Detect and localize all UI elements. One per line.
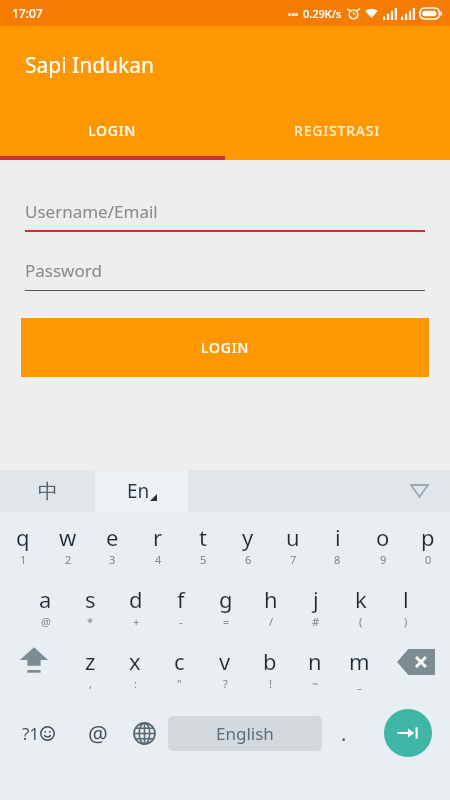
staticText: h bbox=[264, 584, 278, 614]
staticText: f bbox=[177, 584, 185, 614]
staticText: @ bbox=[88, 718, 108, 748]
staticText: l bbox=[403, 584, 409, 614]
staticText: 0 bbox=[425, 552, 432, 567]
button[interactable]: r bbox=[135, 516, 180, 578]
staticText: n bbox=[308, 646, 322, 676]
button[interactable]: i bbox=[315, 516, 360, 578]
button[interactable]: a bbox=[22, 578, 68, 640]
button[interactable]: s bbox=[68, 578, 113, 640]
staticText: = bbox=[223, 614, 230, 629]
staticText: t bbox=[199, 522, 207, 552]
button[interactable]: m bbox=[337, 640, 382, 702]
staticText: @ bbox=[41, 614, 51, 629]
button[interactable]: f bbox=[158, 578, 203, 640]
button[interactable]: En bbox=[95, 470, 188, 512]
button[interactable]: k bbox=[338, 578, 383, 640]
button[interactable]: t bbox=[180, 516, 225, 578]
button[interactable]: Chinese input bbox=[0, 470, 95, 512]
staticText: i bbox=[335, 522, 341, 552]
button[interactable]: c bbox=[157, 640, 202, 702]
button[interactable]: REGISTRASI bbox=[225, 104, 450, 156]
staticText: o bbox=[376, 522, 390, 552]
staticText: k bbox=[355, 584, 367, 614]
staticText: e bbox=[106, 522, 119, 552]
staticText: ) bbox=[404, 614, 408, 629]
button[interactable]: Backspace bbox=[382, 640, 450, 702]
button[interactable]: English bbox=[168, 716, 322, 751]
staticText: REGISTRASI bbox=[294, 121, 381, 140]
staticText: ( bbox=[359, 614, 363, 629]
staticText: 6 bbox=[245, 552, 252, 567]
staticText: a bbox=[39, 584, 52, 614]
button[interactable]: y bbox=[225, 516, 270, 578]
staticText: w bbox=[59, 522, 77, 552]
staticText: LOGIN bbox=[88, 121, 137, 140]
button[interactable]: w bbox=[45, 516, 90, 578]
button[interactable]: g bbox=[203, 578, 248, 640]
staticText: 1 bbox=[20, 552, 27, 567]
staticText: LOGIN bbox=[201, 338, 250, 357]
button[interactable]: Password bbox=[25, 249, 425, 291]
staticText: " bbox=[177, 676, 182, 691]
staticText: 5 bbox=[200, 552, 207, 567]
button[interactable]: n bbox=[292, 640, 337, 702]
staticText: , bbox=[89, 676, 92, 691]
staticText: English bbox=[216, 722, 274, 745]
button[interactable]: z bbox=[68, 640, 112, 702]
staticText: ~ bbox=[312, 676, 319, 691]
button[interactable]: j bbox=[293, 578, 338, 640]
button[interactable]: LOGIN bbox=[21, 318, 429, 377]
staticText: 4 bbox=[155, 552, 162, 567]
button[interactable]: x bbox=[112, 640, 157, 702]
button[interactable]: v bbox=[202, 640, 247, 702]
button[interactable]: l bbox=[383, 578, 428, 640]
staticText: 0.29K/s bbox=[303, 6, 342, 21]
staticText: r bbox=[153, 522, 163, 552]
staticText: Password bbox=[25, 259, 102, 282]
staticText: v bbox=[219, 646, 231, 676]
staticText: ••• bbox=[288, 8, 299, 20]
button[interactable]: o bbox=[360, 516, 405, 578]
staticText: Username/Email bbox=[25, 200, 158, 223]
staticText: : bbox=[134, 676, 137, 691]
button[interactable]: Shift bbox=[0, 640, 68, 702]
button[interactable]: Change language bbox=[120, 702, 168, 764]
button[interactable]: At sign bbox=[76, 702, 120, 764]
staticText: 7 bbox=[290, 552, 297, 567]
staticText: 3 bbox=[109, 552, 116, 567]
staticText: # bbox=[312, 614, 320, 629]
button[interactable]: LOGIN bbox=[0, 104, 225, 156]
staticText: x bbox=[129, 646, 141, 676]
staticText: c bbox=[174, 646, 185, 676]
button[interactable]: e bbox=[90, 516, 135, 578]
staticText: j bbox=[313, 584, 319, 614]
staticText: - bbox=[179, 614, 183, 629]
button[interactable]: h bbox=[248, 578, 293, 640]
button[interactable]: Enter bbox=[366, 702, 450, 764]
button[interactable]: Hide keyboard bbox=[188, 470, 450, 512]
button[interactable]: b bbox=[247, 640, 292, 702]
button[interactable]: Period bbox=[322, 702, 366, 764]
staticText: q bbox=[16, 522, 30, 552]
staticText: 9 bbox=[380, 552, 387, 567]
button[interactable]: Username/Email bbox=[25, 190, 425, 232]
staticText: ? bbox=[223, 676, 228, 691]
button[interactable]: p bbox=[405, 516, 450, 578]
button[interactable]: u bbox=[270, 516, 315, 578]
button[interactable]: q bbox=[0, 516, 45, 578]
staticText: 8 bbox=[334, 552, 341, 567]
button[interactable]: d bbox=[113, 578, 158, 640]
staticText: s bbox=[85, 584, 96, 614]
button[interactable]: Symbols and emoji bbox=[0, 702, 76, 764]
staticText: 中 bbox=[38, 479, 58, 504]
staticText: ! bbox=[269, 676, 272, 691]
staticText: Sapi Indukan bbox=[25, 51, 155, 80]
staticText: . bbox=[341, 720, 347, 747]
staticText: _ bbox=[357, 676, 362, 691]
staticText: ?1 bbox=[22, 722, 40, 745]
staticText: g bbox=[219, 584, 233, 614]
staticText: b bbox=[263, 646, 277, 676]
staticText: m bbox=[349, 646, 370, 676]
staticText: 17:07 bbox=[12, 5, 43, 21]
staticText: En bbox=[127, 478, 150, 504]
